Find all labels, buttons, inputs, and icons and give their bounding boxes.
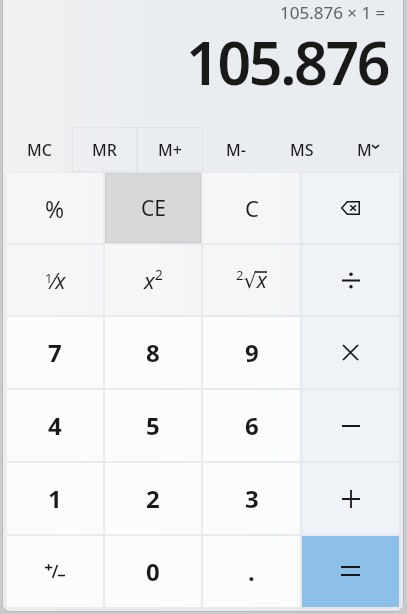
button[interactable]: Equals [302,536,399,607]
staticText: 7 [48,336,62,369]
staticText: 3 [245,482,259,515]
staticText: 4 [48,409,62,442]
staticText: MR [92,139,117,161]
button[interactable]: 5 [105,390,201,461]
staticText: % [45,193,65,224]
button[interactable]: Reciprocal [7,245,103,315]
staticText: 105.876 [186,22,389,102]
button[interactable]: M- [203,127,269,172]
button[interactable]: Square root [203,245,300,315]
staticText: 8 [146,336,160,369]
staticText: MC [27,139,52,161]
staticText: M- [226,139,246,161]
button[interactable]: M+ [137,127,203,172]
button[interactable]: MC [7,127,72,172]
button[interactable]: Backspace [302,173,399,243]
button[interactable]: 2 [105,463,201,534]
button[interactable]: 8 [105,317,201,388]
staticText: 2 [146,482,160,515]
button[interactable]: 6 [203,390,300,461]
staticText: C [245,193,259,223]
staticText: 1⁄x [45,265,66,295]
button[interactable]: CE [105,173,201,243]
button[interactable]: MR [72,127,137,172]
staticText: M+ [158,139,182,161]
staticText: 0 [146,555,160,588]
button[interactable]: 4 [7,390,103,461]
staticText: 5 [146,409,160,442]
staticText: 6 [245,409,259,442]
staticText: 105.876 × 1 = [280,1,386,24]
button[interactable]: Square [105,245,201,315]
button[interactable]: . [203,536,300,607]
button[interactable]: Multiply [302,317,399,388]
staticText: . [248,555,255,588]
button[interactable]: More memory options [335,127,401,172]
button[interactable]: Positive negative [7,536,103,607]
staticText: 1 [48,482,62,515]
button[interactable]: 7 [7,317,103,388]
staticText: M [357,139,372,161]
staticText: 2√x [236,266,267,295]
button[interactable]: 1 [7,463,103,534]
staticText: x2 [144,265,163,295]
button[interactable]: MS [269,127,335,172]
button[interactable]: 9 [203,317,300,388]
button[interactable]: C [203,173,300,243]
button[interactable]: 3 [203,463,300,534]
staticText: 9 [245,336,259,369]
staticText: MS [290,139,314,161]
button[interactable]: % [7,173,103,243]
button[interactable]: Add [302,463,399,534]
button[interactable]: 0 [105,536,201,607]
button[interactable]: Divide [302,245,399,315]
staticText: CE [141,194,166,223]
button[interactable]: Subtract [302,390,399,461]
